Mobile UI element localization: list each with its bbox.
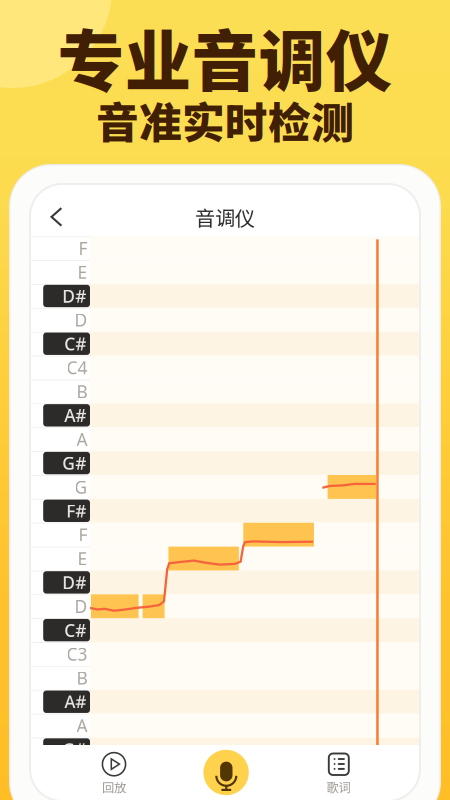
button[interactable]: 回放 — [66, 745, 162, 800]
staticText: A# — [64, 690, 86, 713]
button[interactable]: 歌词 — [290, 745, 386, 800]
staticText: F — [78, 237, 87, 260]
staticText: D — [74, 595, 87, 618]
staticText: A — [76, 428, 87, 451]
staticText: C3 — [66, 642, 87, 665]
staticText: G# — [62, 452, 86, 475]
button[interactable]: 返回 — [36, 197, 76, 237]
staticText: A — [76, 714, 87, 737]
staticText: E — [77, 547, 87, 570]
staticText: G# — [62, 738, 86, 761]
staticText: C4 — [66, 356, 87, 379]
staticText: D — [74, 308, 87, 331]
staticText: F# — [66, 499, 86, 522]
staticText: C# — [64, 619, 86, 642]
staticText: D# — [62, 284, 86, 307]
staticText: E — [77, 261, 87, 284]
staticText: 回放 — [102, 778, 126, 796]
staticText: 音准实时检测 — [96, 89, 354, 151]
button[interactable]: 录音 — [203, 750, 249, 795]
staticText: G — [74, 475, 87, 498]
staticText: 音调仪 — [195, 202, 255, 231]
staticText: F — [78, 523, 87, 546]
staticText: 专业音调仪 — [57, 9, 392, 105]
staticText: 歌词 — [326, 778, 350, 796]
staticText: A# — [64, 404, 86, 427]
staticText: C# — [64, 332, 86, 355]
staticText: B — [76, 380, 87, 403]
staticText: D# — [62, 571, 86, 594]
staticText: B — [76, 666, 87, 689]
